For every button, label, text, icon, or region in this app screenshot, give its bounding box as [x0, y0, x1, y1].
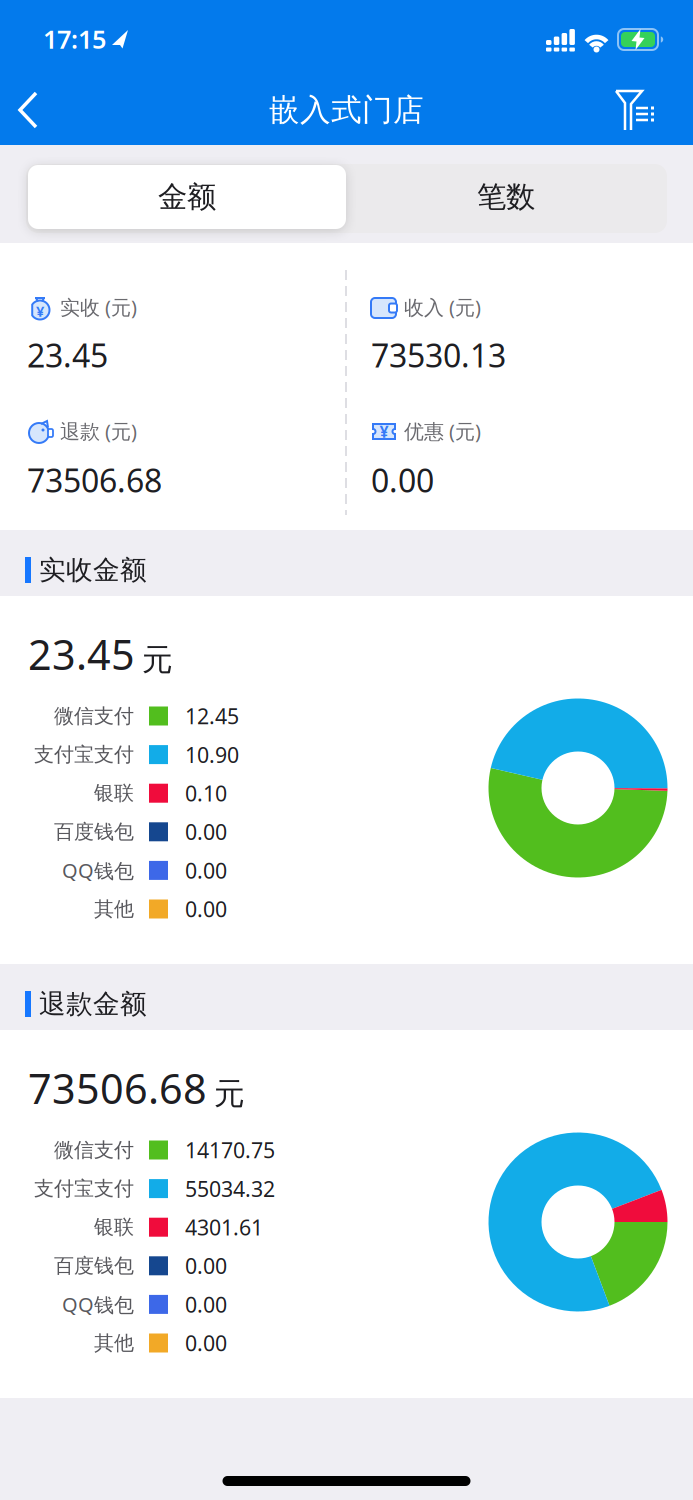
- staticText: 0.00: [185, 1329, 227, 1357]
- staticText: 银联: [94, 781, 134, 805]
- staticText: 银联: [94, 1215, 134, 1239]
- staticText: 12.45: [185, 702, 239, 730]
- staticText: QQ钱包: [62, 1291, 134, 1318]
- staticText: 0.00: [185, 818, 227, 846]
- staticText: 0.00: [185, 895, 227, 923]
- staticText: 14170.75: [185, 1136, 275, 1164]
- staticText: 微信支付: [54, 704, 134, 728]
- staticText: 其他: [94, 1331, 134, 1355]
- staticText: 优惠 (元): [404, 418, 481, 444]
- staticText: 笔数: [477, 179, 535, 215]
- staticText: ¥: [379, 421, 388, 442]
- staticText: 实收金额: [39, 554, 147, 586]
- staticText: 10.90: [185, 740, 239, 769]
- staticText: 百度钱包: [54, 1253, 134, 1278]
- button[interactable]: 金额: [28, 165, 346, 229]
- staticText: 退款 (元): [60, 418, 137, 444]
- staticText: ¥: [36, 301, 44, 321]
- staticText: 73530.13: [371, 334, 506, 376]
- staticText: 0.00: [185, 856, 227, 884]
- staticText: 4301.61: [185, 1213, 263, 1241]
- staticText: 微信支付: [54, 1138, 134, 1162]
- button[interactable]: 笔数: [347, 165, 665, 229]
- staticText: 23.45: [28, 627, 135, 681]
- button[interactable]: Back: [9, 84, 57, 136]
- staticText: 0.10: [185, 779, 227, 807]
- staticText: 55034.32: [185, 1174, 275, 1203]
- staticText: 其他: [94, 897, 134, 921]
- staticText: 元: [142, 641, 173, 679]
- staticText: 0.00: [371, 459, 434, 501]
- staticText: 73506.68: [28, 1061, 207, 1115]
- staticText: 百度钱包: [54, 819, 134, 844]
- staticText: 金额: [158, 179, 216, 215]
- staticText: 0.00: [185, 1252, 227, 1280]
- staticText: QQ钱包: [62, 857, 134, 884]
- staticText: 退款金额: [39, 988, 147, 1020]
- staticText: 元: [214, 1075, 245, 1113]
- staticText: 实收 (元): [60, 294, 137, 320]
- button[interactable]: Filter: [611, 85, 659, 135]
- staticText: 嵌入式门店: [269, 91, 424, 129]
- staticText: 收入 (元): [404, 294, 481, 320]
- staticText: 23.45: [27, 334, 108, 376]
- staticText: 73506.68: [27, 459, 162, 501]
- staticText: 17:15: [43, 22, 106, 56]
- staticText: 0.00: [185, 1290, 227, 1318]
- staticText: 支付宝支付: [34, 742, 134, 767]
- staticText: 支付宝支付: [34, 1176, 134, 1201]
